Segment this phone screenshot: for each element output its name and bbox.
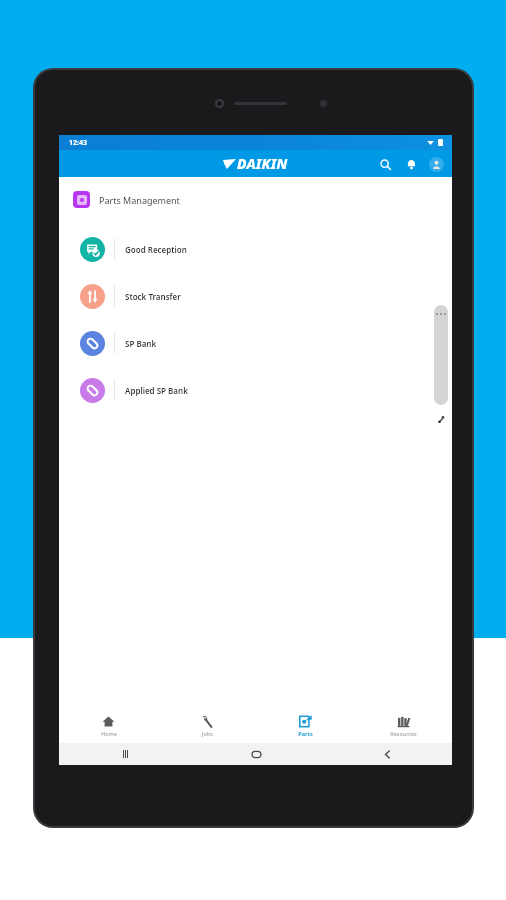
button[interactable]: Resources xyxy=(354,708,452,743)
staticText: DAIKIN xyxy=(237,154,288,173)
button[interactable]: Notifications xyxy=(403,156,419,172)
button[interactable]: Scroll xyxy=(434,305,448,405)
button[interactable]: Jobs xyxy=(158,708,256,743)
staticText: SP Bank xyxy=(125,338,157,349)
staticText: Good Reception xyxy=(125,244,187,255)
button[interactable]: Home xyxy=(249,747,263,761)
button[interactable]: Stock Transfer xyxy=(70,275,441,317)
button[interactable]: Profile xyxy=(429,157,444,172)
button[interactable]: Drag handle xyxy=(438,415,446,423)
button[interactable]: Search xyxy=(377,156,393,172)
staticText: Resources xyxy=(390,730,417,737)
button[interactable]: Parts xyxy=(256,708,354,743)
staticText: 12:43 xyxy=(69,138,87,148)
button[interactable]: Applied SP Bank xyxy=(70,369,441,411)
staticText: Stock Transfer xyxy=(125,291,181,302)
staticText: Applied SP Bank xyxy=(125,385,188,396)
button[interactable]: Recents xyxy=(118,747,132,761)
button[interactable]: Back xyxy=(380,747,394,761)
staticText: Jobs xyxy=(202,730,213,737)
staticText: Home xyxy=(101,730,117,737)
button[interactable]: Parts Management xyxy=(64,183,447,215)
button[interactable]: SP Bank xyxy=(70,322,441,364)
staticText: Parts xyxy=(298,730,313,737)
button[interactable]: Home xyxy=(59,708,158,743)
staticText: Parts Management xyxy=(99,194,180,206)
button[interactable]: Good Reception xyxy=(70,228,441,270)
